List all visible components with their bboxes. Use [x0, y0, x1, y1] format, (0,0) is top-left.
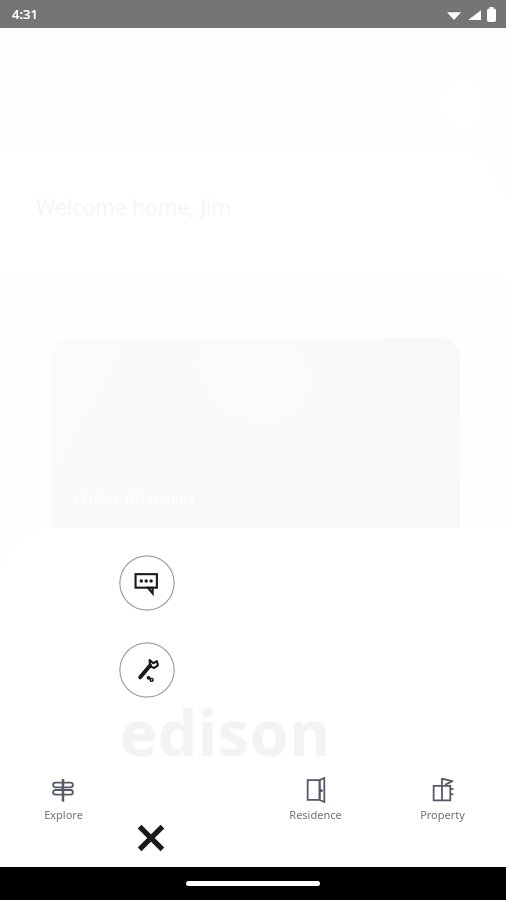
- staticText: Property: [420, 807, 465, 822]
- button[interactable]: [0, 0, 506, 900]
- button[interactable]: Close menu: [113, 800, 189, 876]
- staticText: Explore: [44, 807, 83, 822]
- button[interactable]: Residence: [252, 777, 379, 845]
- staticText: Welcome home, Jim: [36, 193, 232, 222]
- button[interactable]: Maintenance: [119, 642, 175, 698]
- staticText: 4:31: [12, 5, 38, 23]
- button[interactable]: Messages: [119, 555, 175, 611]
- staticText: Residence: [289, 807, 342, 822]
- button[interactable]: Explore: [0, 777, 126, 845]
- button[interactable]: Property: [379, 777, 506, 845]
- staticText: edison: [120, 690, 331, 774]
